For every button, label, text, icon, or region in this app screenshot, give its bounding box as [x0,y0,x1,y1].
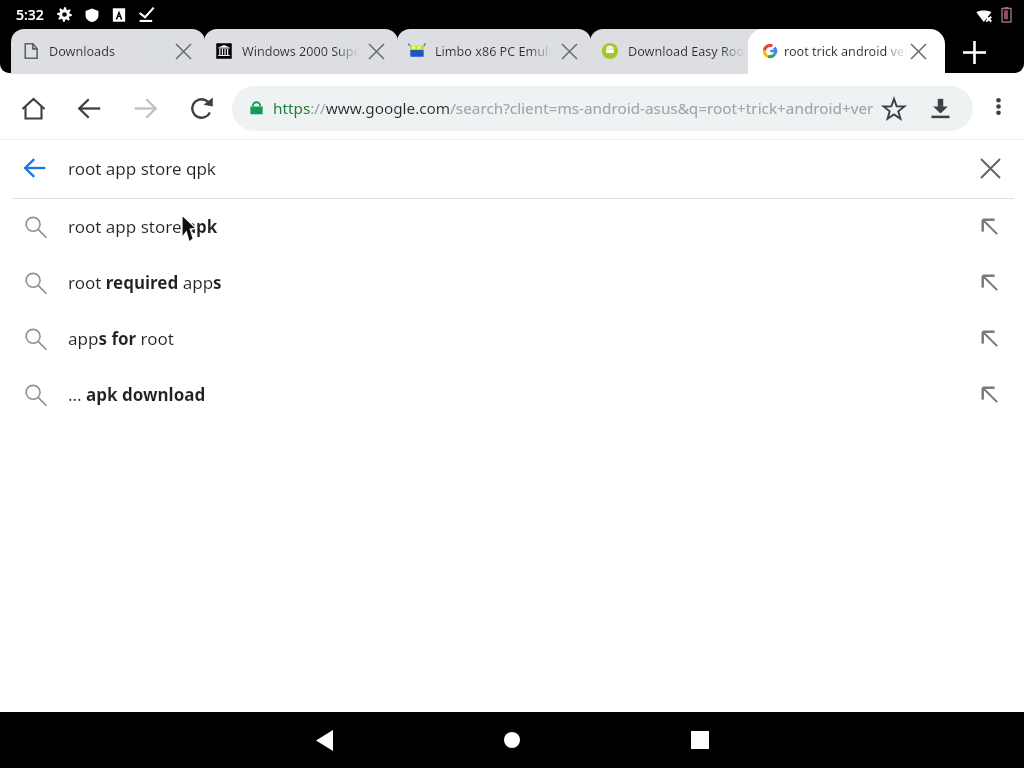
staticText: root required apps [68,271,222,294]
button[interactable]: ... apk download [0,366,1024,422]
button[interactable]: apps for root [0,310,1024,366]
button[interactable]: New tab [953,31,995,73]
staticText: root app store qpk [68,157,216,180]
button[interactable]: Download Easy Root Tools apk [590,29,784,74]
button[interactable]: https://www.google.com/search?client=ms-… [232,86,973,131]
staticText: ... apk download [68,383,206,406]
button[interactable]: Windows 2000 Super Boot Dis [204,29,398,74]
button[interactable]: Fill query [981,254,1019,310]
button[interactable]: Fill query [981,198,1019,254]
staticText: apps for root [68,327,175,350]
button[interactable]: Close tab [167,35,200,68]
staticText: Windows 2000 Super Boot Dis [242,43,359,60]
button[interactable]: Bookmark [873,88,914,129]
button[interactable]: Fill query [981,366,1019,422]
button[interactable]: root trick android version [748,29,945,74]
button[interactable]: Home [481,712,543,768]
button[interactable]: Downloads [920,88,961,129]
staticText: Downloads [49,43,115,60]
button[interactable]: Close tab [553,35,586,68]
staticText: root trick android version [784,43,908,60]
button[interactable]: Downloads [11,29,205,74]
button[interactable]: Clear [981,140,1019,196]
staticText: root app store apk [68,215,218,238]
button[interactable]: root app store qpk [0,140,1024,196]
staticText: Download Easy Root Tools apk [628,43,745,60]
button[interactable]: Close tab [902,35,935,68]
button[interactable]: Reload [178,85,225,132]
button[interactable]: Back [66,85,113,132]
button[interactable]: root app store apk [0,198,1024,254]
staticText: https://www.google.com/search?client=ms-… [273,98,874,119]
button[interactable]: Limbo x86 PC Emulator - App [397,29,591,74]
staticText: 5:32 [16,5,44,24]
button[interactable]: Close tab [360,35,393,68]
button[interactable]: Home [10,85,57,132]
staticText: Limbo x86 PC Emulator - App [435,43,552,60]
button[interactable]: root required apps [0,254,1024,310]
button[interactable]: Close tab [746,35,779,68]
button[interactable]: Recents [669,712,731,768]
button[interactable]: Fill query [981,310,1019,366]
button[interactable]: Forward [122,85,169,132]
button[interactable]: More options [976,84,1020,128]
button[interactable]: Back [293,712,355,768]
